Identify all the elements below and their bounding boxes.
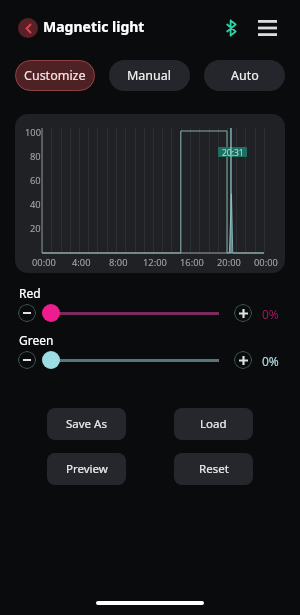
staticText: Auto — [231, 67, 259, 84]
staticText: 0% — [262, 306, 279, 320]
staticText: 12:00 — [143, 256, 167, 267]
staticText: Manual — [127, 67, 172, 84]
staticText: 60 — [30, 174, 41, 185]
button[interactable]: Customize — [15, 60, 95, 91]
button[interactable]: Back — [18, 18, 38, 38]
staticText: 20:00 — [217, 256, 241, 267]
staticText: Green — [19, 332, 54, 346]
staticText: 80 — [30, 150, 41, 161]
staticText: 00:00 — [32, 256, 56, 267]
button[interactable]: Bluetooth — [219, 16, 243, 40]
button[interactable]: Manual — [109, 60, 190, 91]
staticText: Red — [19, 285, 41, 299]
button[interactable]: Load — [174, 408, 253, 440]
staticText: Preview — [66, 461, 108, 477]
staticText: 40 — [30, 198, 41, 209]
staticText: 16:00 — [180, 256, 204, 267]
staticText: Reset — [199, 461, 229, 477]
staticText: 00:00 — [254, 256, 278, 267]
staticText: Magnetic light — [43, 17, 145, 36]
button[interactable]: Menu — [255, 16, 279, 40]
button[interactable]: Increase Red — [234, 304, 252, 322]
button[interactable]: Decrease Green — [18, 351, 36, 369]
staticText: Customize — [24, 67, 86, 84]
button[interactable]: Green level — [42, 351, 60, 369]
button[interactable]: Save As — [47, 408, 126, 440]
button[interactable]: Auto — [204, 60, 285, 91]
button[interactable]: Decrease Red — [18, 304, 36, 322]
button[interactable]: Preview — [47, 453, 126, 485]
staticText: 20:31 — [222, 147, 244, 157]
staticText: 20 — [30, 222, 41, 233]
staticText: 4:00 — [72, 256, 91, 267]
button[interactable]: Red level — [42, 304, 60, 322]
staticText: 100 — [25, 126, 41, 137]
staticText: 0% — [262, 353, 279, 367]
button[interactable]: Reset — [174, 453, 253, 485]
staticText: 8:00 — [109, 256, 128, 267]
button[interactable]: Increase Green — [234, 351, 252, 369]
staticText: Load — [200, 416, 227, 432]
staticText: Save As — [66, 416, 107, 432]
